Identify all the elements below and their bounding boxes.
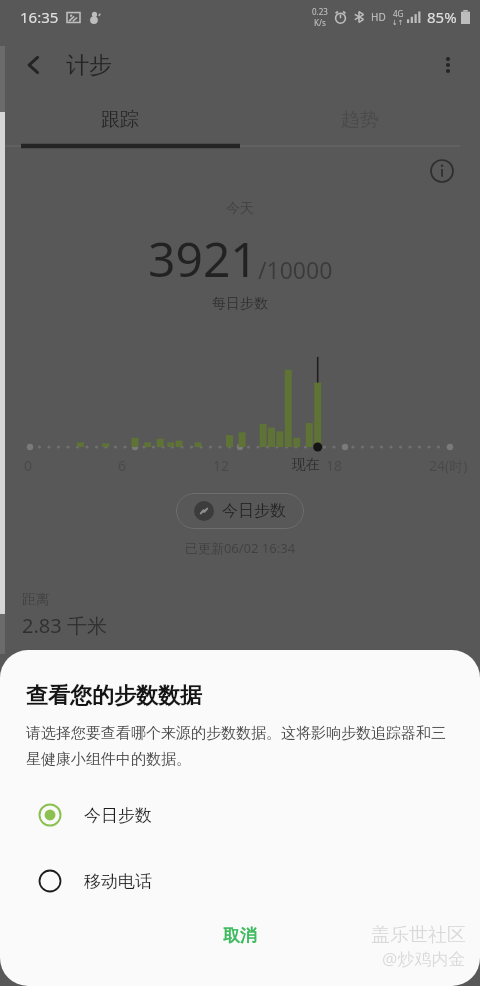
- staticText: 查看您的步数数据: [26, 682, 202, 710]
- button[interactable]: 跟踪: [0, 96, 240, 144]
- staticText: @炒鸡内金: [382, 947, 466, 970]
- staticText: 计步: [66, 51, 112, 80]
- staticText: 移动电话: [84, 871, 152, 892]
- staticText: 4G: [393, 8, 404, 19]
- staticText: 今日步数: [222, 501, 286, 521]
- staticText: 18: [326, 456, 343, 475]
- staticText: 2.83 千米: [22, 612, 107, 639]
- staticText: 跟踪: [101, 108, 139, 132]
- button[interactable]: Back: [10, 41, 58, 89]
- staticText: 3921: [148, 226, 258, 291]
- staticText: 距离: [22, 591, 50, 609]
- staticText: 6: [118, 456, 127, 475]
- button[interactable]: 移动电话: [0, 855, 480, 907]
- button[interactable]: 今日步数: [0, 789, 480, 841]
- staticText: 趋势: [341, 108, 379, 132]
- staticText: 16:35: [20, 7, 59, 27]
- staticText: 盖乐世社区: [371, 923, 466, 947]
- staticText: /10000: [258, 254, 333, 285]
- staticText: HD: [371, 10, 386, 24]
- staticText: 现在: [292, 456, 320, 474]
- staticText: 今日步数: [84, 805, 152, 826]
- staticText: 85%: [427, 7, 457, 27]
- staticText: 请选择您要查看哪个来源的步数数据。这将影响步数追踪器和三星健康小组件中的数据。: [26, 724, 458, 769]
- staticText: 12: [213, 456, 230, 475]
- button[interactable]: 今日步数: [176, 493, 304, 529]
- staticText: 已更新06/02 16:34: [0, 539, 480, 557]
- button[interactable]: Information: [422, 151, 462, 191]
- staticText: 0: [24, 456, 33, 475]
- staticText: 0.23: [312, 6, 328, 17]
- staticText: ↓↑: [392, 19, 404, 27]
- staticText: 24(时): [429, 456, 468, 475]
- staticText: 每日步数: [0, 295, 480, 313]
- staticText: 取消: [223, 925, 257, 946]
- button[interactable]: 取消: [183, 915, 297, 956]
- button[interactable]: More options: [424, 41, 472, 89]
- staticText: 今天: [0, 200, 480, 218]
- staticText: K/s: [314, 17, 326, 28]
